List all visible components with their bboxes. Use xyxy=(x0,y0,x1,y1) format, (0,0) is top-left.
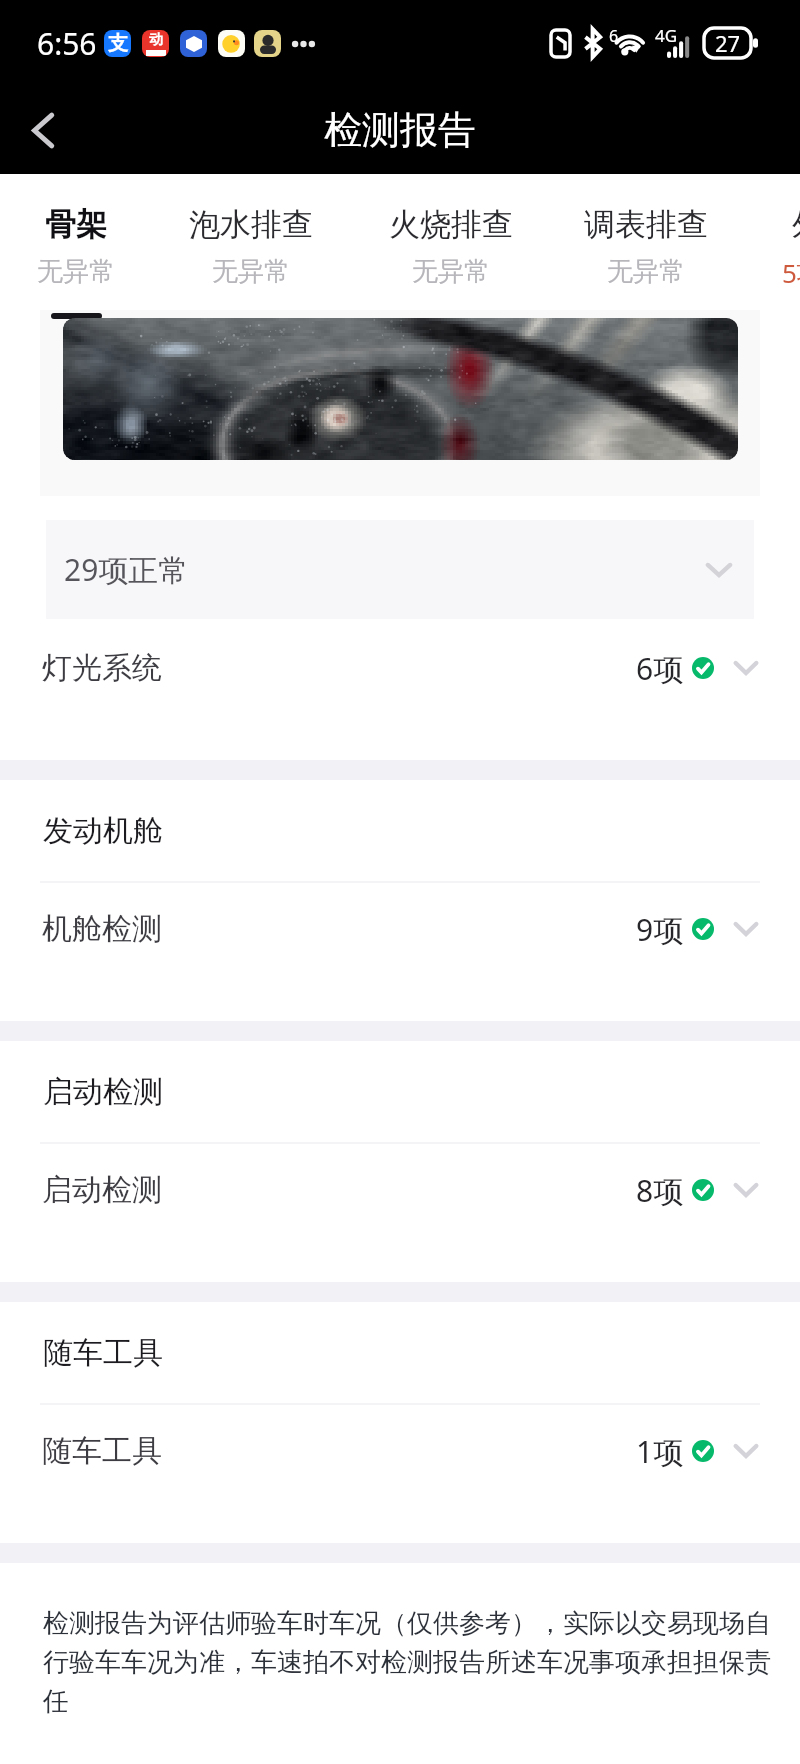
staticText: 27 xyxy=(715,28,741,58)
staticText: 机舱检测 xyxy=(42,910,162,948)
staticText: 随车工具 xyxy=(42,1432,162,1470)
staticText: 外观检查 xyxy=(792,205,800,244)
button[interactable]: 调表排查 xyxy=(546,174,746,310)
staticText: 无异常 xyxy=(37,255,115,288)
button[interactable]: 骨架 xyxy=(16,174,136,310)
staticText: 骨架 xyxy=(45,205,107,244)
staticText: 启动检测 xyxy=(42,1171,162,1209)
staticText: 发动机舱 xyxy=(43,812,163,850)
staticText: 6项 xyxy=(636,648,684,689)
staticText: 动 xyxy=(149,31,163,49)
button[interactable]: Inspection photo xyxy=(63,318,738,460)
staticText: 无异常 xyxy=(412,255,490,288)
staticText: 5项异常 xyxy=(782,255,800,291)
staticText: 火烧排查 xyxy=(389,205,513,244)
button[interactable]: 启动检测 xyxy=(0,1144,800,1236)
button[interactable]: Back xyxy=(12,100,72,160)
staticText: 启动检测 xyxy=(43,1073,163,1111)
staticText: 支 xyxy=(108,31,128,56)
staticText: 调表排查 xyxy=(584,205,708,244)
button[interactable]: 随车工具 xyxy=(0,1405,800,1497)
button[interactable]: 火烧排查 xyxy=(351,174,551,310)
staticText: 6 xyxy=(609,25,619,47)
button[interactable]: 泡水排查 xyxy=(151,174,351,310)
staticText: 灯光系统 xyxy=(42,649,162,687)
staticText: 检测报告为评估师验车时车况（仅供参考），实际以交易现场自行验车车况为准，车速拍不… xyxy=(43,1607,784,1718)
staticText: 检测报告 xyxy=(324,106,476,154)
staticText: 泡水排查 xyxy=(189,205,313,244)
staticText: 无异常 xyxy=(607,255,685,288)
staticText: 随车工具 xyxy=(43,1334,163,1372)
button[interactable]: 机舱检测 xyxy=(0,883,800,975)
staticText: 4G xyxy=(655,24,678,47)
staticText: 9项 xyxy=(636,909,684,950)
staticText: 无异常 xyxy=(212,255,290,288)
staticText: 6:56 xyxy=(37,23,97,64)
staticText: 29项正常 xyxy=(64,549,189,590)
staticText: 8项 xyxy=(636,1170,684,1211)
staticText: 1项 xyxy=(636,1431,684,1472)
button[interactable]: 外观检查 xyxy=(782,174,800,310)
button[interactable]: 29项正常 xyxy=(46,520,754,619)
button[interactable]: 灯光系统 xyxy=(0,620,800,716)
